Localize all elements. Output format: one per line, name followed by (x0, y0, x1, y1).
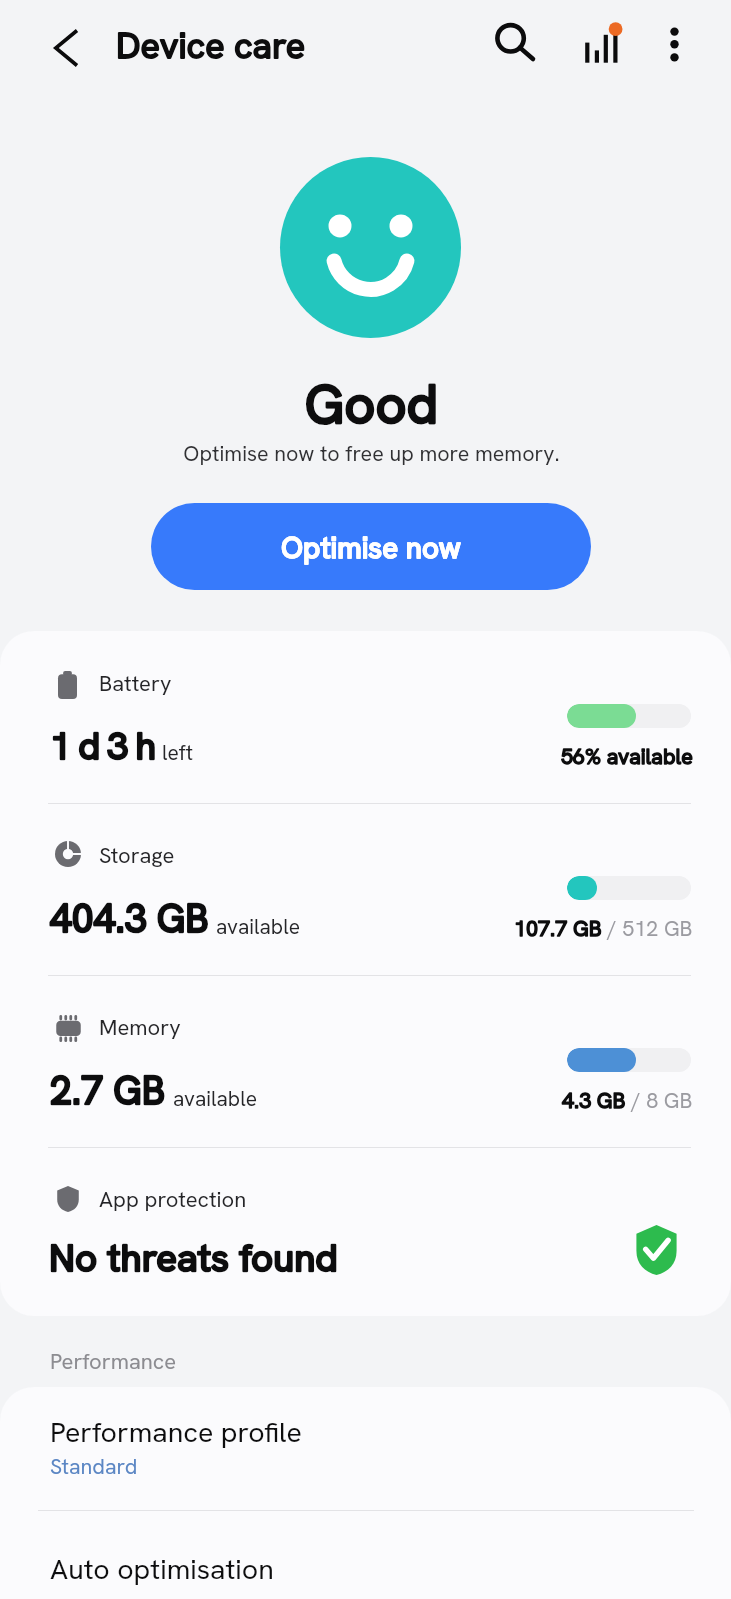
staticText: 2.7 GB (50, 1065, 166, 1116)
button[interactable]: Optimise now (151, 503, 591, 590)
staticText: 56% available (561, 742, 693, 770)
staticText: Battery (99, 669, 172, 698)
button[interactable]: Usage statistics (576, 8, 642, 74)
staticText: 1 d 3 h (50, 721, 155, 770)
staticText: / 512 GB (602, 914, 693, 942)
button[interactable]: Performance profile (0, 1387, 731, 1510)
staticText: Good (6, 369, 731, 439)
button[interactable]: Search (481, 8, 547, 74)
staticText: Device care (116, 22, 306, 69)
button[interactable]: More options (642, 8, 708, 74)
staticText: App protection (99, 1185, 247, 1214)
staticText: 4.3 GB (562, 1086, 626, 1114)
staticText: No threats found (49, 1232, 338, 1282)
staticText: Optimise now to free up more memory. (6, 439, 731, 467)
staticText: No threats found (49, 1232, 338, 1282)
button[interactable]: Auto optimisation (0, 1511, 731, 1599)
staticText: 2.7 GB (50, 1065, 166, 1116)
button[interactable]: Battery (0, 631, 731, 803)
staticText: 56% available (561, 742, 693, 770)
staticText: 404.3 GB (50, 893, 209, 944)
staticText: left (162, 739, 194, 766)
button[interactable]: App protection (0, 1147, 731, 1316)
staticText: / 8 GB (626, 1086, 693, 1114)
staticText: Auto optimisation (50, 1550, 274, 1587)
staticText: 1 d 3 h (50, 721, 155, 770)
staticText: available (216, 913, 301, 940)
button[interactable]: Navigate up (32, 14, 100, 82)
staticText: Memory (99, 1013, 181, 1042)
staticText: 404.3 GB (50, 893, 209, 944)
staticText: Good (6, 369, 731, 439)
staticText: 107.7 GB (514, 914, 602, 942)
staticText: available (173, 1085, 258, 1112)
button[interactable]: Storage (0, 803, 731, 975)
staticText: 107.7 GB (514, 914, 602, 942)
staticText: 4.3 GB (562, 1086, 626, 1114)
staticText: Performance profile (50, 1413, 302, 1450)
staticText: Standard (50, 1452, 138, 1480)
staticText: Performance (50, 1347, 177, 1376)
staticText: Optimise now (281, 528, 461, 566)
staticText: Device care (116, 22, 306, 69)
staticText: Optimise now (281, 528, 461, 566)
staticText: Storage (99, 841, 175, 870)
button[interactable]: Memory (0, 975, 731, 1147)
